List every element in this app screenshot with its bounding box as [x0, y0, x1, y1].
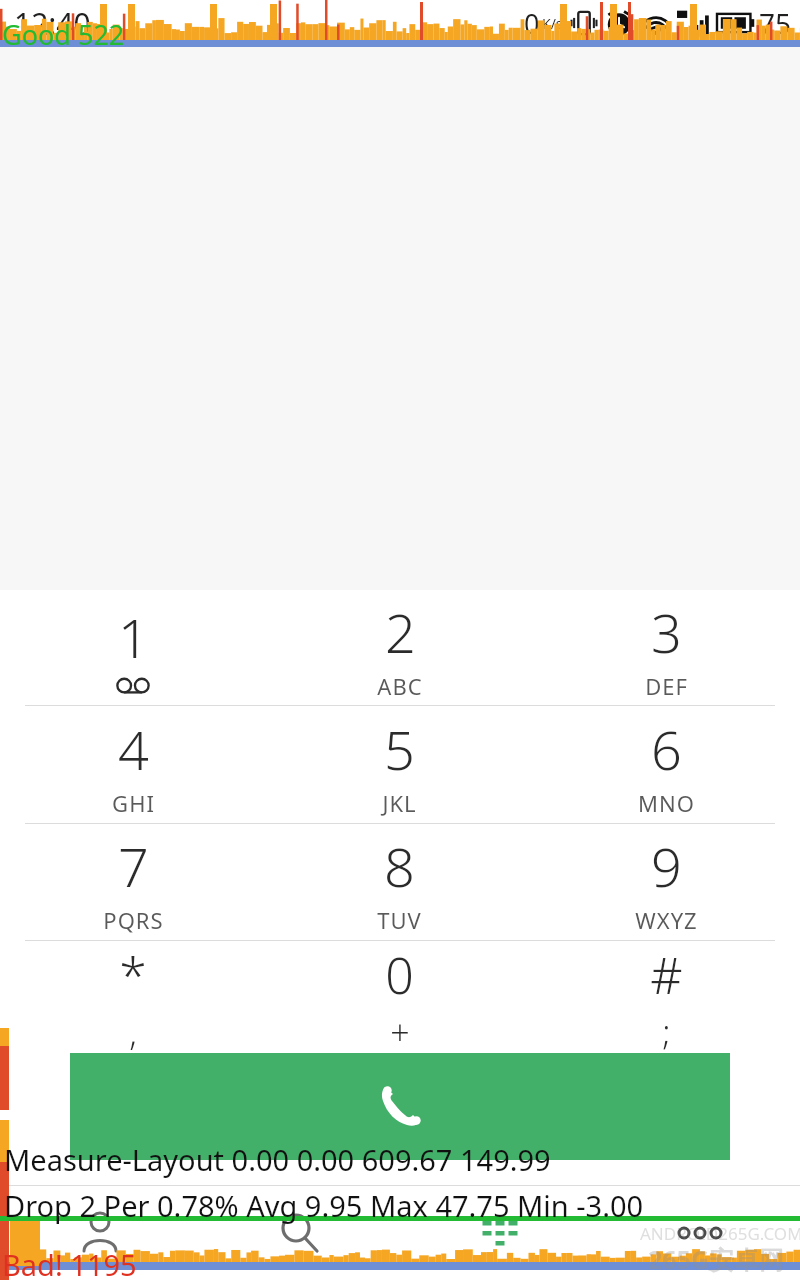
button[interactable]: Call: [70, 1053, 730, 1160]
button[interactable]: 6: [533, 706, 800, 823]
staticText: #: [650, 941, 683, 1009]
button[interactable]: 5: [266, 706, 533, 823]
button[interactable]: 3: [533, 590, 800, 705]
staticText: 4: [118, 712, 149, 786]
staticText: 5: [384, 712, 415, 786]
staticText: 0: [524, 5, 540, 42]
staticText: +: [390, 1009, 410, 1053]
button[interactable]: 9: [533, 824, 800, 940]
staticText: 3: [651, 595, 682, 669]
staticText: 12:40: [14, 3, 91, 44]
staticText: Measure-Layout 0.00 0.00 609.67 149.99: [4, 1140, 551, 1179]
staticText: DEF: [645, 671, 688, 701]
staticText: 8: [384, 829, 415, 903]
button[interactable]: *: [0, 941, 266, 1053]
button[interactable]: 1: [0, 590, 266, 705]
button[interactable]: #: [533, 941, 800, 1053]
staticText: JKL: [382, 788, 417, 818]
button[interactable]: More options: [600, 1186, 800, 1280]
staticText: 9: [651, 829, 682, 903]
staticText: 1: [118, 600, 149, 674]
staticText: WXYZ: [635, 905, 698, 935]
button[interactable]: Dialpad: [400, 1186, 600, 1280]
button[interactable]: Search: [200, 1186, 400, 1280]
button[interactable]: 0: [266, 941, 533, 1053]
button[interactable]: 2: [266, 590, 533, 705]
staticText: PQRS: [103, 905, 164, 935]
staticText: 2: [385, 595, 416, 669]
staticText: ABC: [377, 671, 423, 701]
staticText: ANDROID265G.COM: [640, 1222, 800, 1245]
staticText: *: [119, 941, 147, 1009]
staticText: GHI: [112, 788, 155, 818]
button[interactable]: 7: [0, 824, 266, 940]
staticText: Bad! 1195: [2, 1245, 137, 1280]
staticText: ,: [129, 1009, 137, 1053]
staticText: 7: [118, 829, 149, 903]
other: Call: [372, 1079, 428, 1135]
staticText: ;: [662, 1009, 671, 1053]
button[interactable]: 8: [266, 824, 533, 940]
staticText: MNO: [638, 788, 695, 818]
button[interactable]: Contacts: [0, 1186, 200, 1280]
button[interactable]: 4: [0, 706, 266, 823]
staticText: 75: [759, 4, 792, 42]
staticText: 265G安卓网: [648, 1242, 785, 1276]
staticText: K/s: [542, 14, 563, 33]
staticText: 6: [651, 712, 682, 786]
staticText: 0: [385, 941, 414, 1009]
staticText: Drop 2 Per 0.78% Avg 9.95 Max 47.75 Min …: [4, 1186, 644, 1225]
staticText: TUV: [377, 905, 422, 935]
staticText: Good 522: [2, 16, 125, 53]
